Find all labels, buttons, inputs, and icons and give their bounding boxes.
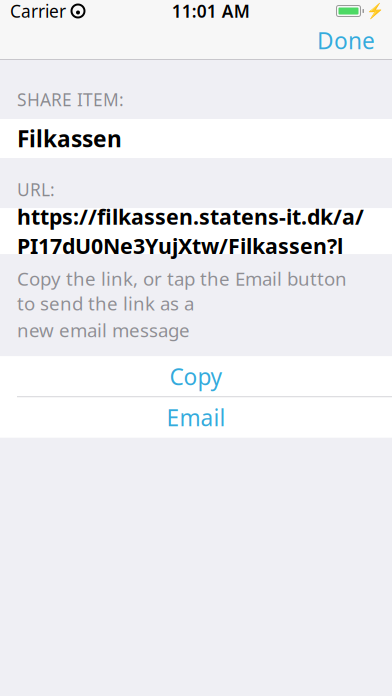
button[interactable]: Done	[309, 19, 383, 61]
staticText: URL:	[17, 178, 55, 201]
staticText: Copy	[169, 361, 222, 391]
button[interactable]: Copy	[0, 356, 392, 396]
staticText: Filkassen	[17, 123, 122, 154]
button[interactable]: Email	[0, 397, 392, 437]
staticText: Carrier	[10, 0, 66, 22]
staticText: Email	[166, 402, 225, 432]
staticText: Copy the link, or tap the Email button t…	[17, 266, 347, 316]
staticText: PI17dU0Ne3YujXtw/Filkassen?l	[17, 231, 343, 260]
staticText: SHARE ITEM:	[17, 88, 124, 111]
staticText: ⚡	[366, 3, 384, 19]
staticText: https://filkassen.statens-it.dk/a/	[17, 202, 364, 230]
staticText: Done	[317, 25, 375, 55]
staticText: 11:01 AM	[172, 0, 250, 22]
staticText: new email message	[17, 318, 190, 342]
